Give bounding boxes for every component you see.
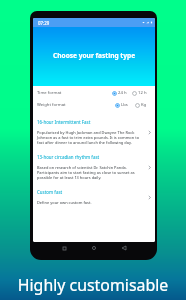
button[interactable]: Open 16-hour Intermittent Fast xyxy=(145,128,153,136)
button[interactable]: Back xyxy=(119,243,129,253)
button[interactable]: Home xyxy=(89,243,99,253)
staticText: 16-hour Intermittent Fast xyxy=(37,119,91,125)
button[interactable]: Kg xyxy=(135,102,147,108)
button[interactable]: 12 h xyxy=(132,90,147,96)
staticText: 12 h xyxy=(138,90,147,96)
staticText: Kg xyxy=(141,102,147,108)
staticText: Time format xyxy=(37,90,62,96)
staticText: Popularised by Hugh Jackman and Dwayne T… xyxy=(37,130,141,145)
staticText: Choose your fasting type xyxy=(53,51,136,60)
staticText: Lbs xyxy=(121,102,128,108)
button[interactable]: Open Custom fast xyxy=(145,193,153,201)
staticText: 07:29 xyxy=(38,20,50,26)
staticText: Highly customisable xyxy=(0,274,186,296)
button[interactable]: Lbs xyxy=(115,102,128,108)
staticText: 13-hour circadian rhythm fast xyxy=(37,154,100,160)
staticText: 24 h xyxy=(118,90,127,96)
staticText: Weight format xyxy=(37,102,66,108)
staticText: Based on research of scientist Dr. Satch… xyxy=(37,165,141,180)
button[interactable]: 13-hour circadian rhythm fast xyxy=(33,150,155,185)
button[interactable]: Recent apps xyxy=(59,243,69,253)
button[interactable]: 24 h xyxy=(112,90,127,96)
staticText: Custom fast xyxy=(37,189,63,195)
staticText: Define your own custom fast. xyxy=(37,200,92,205)
button[interactable]: Custom fast xyxy=(33,185,155,210)
button[interactable]: Open 13-hour circadian rhythm fast xyxy=(145,163,153,171)
button[interactable]: Time format xyxy=(33,87,155,99)
button[interactable]: Weight format xyxy=(33,99,155,111)
button[interactable]: 16-hour Intermittent Fast xyxy=(33,115,155,150)
